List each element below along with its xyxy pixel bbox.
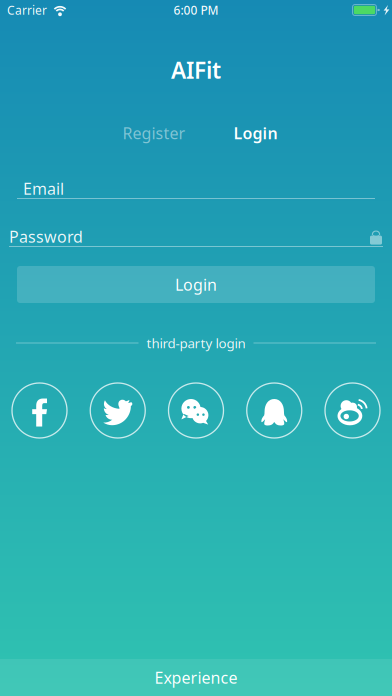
staticText: Login [175, 274, 217, 295]
button[interactable]: Login [203, 120, 308, 146]
button[interactable]: Facebook [12, 383, 67, 438]
staticText: Carrier [7, 2, 47, 18]
staticText: Password [9, 226, 83, 247]
button[interactable]: WeChat [168, 383, 223, 438]
button[interactable]: Experience [0, 659, 392, 696]
staticText: third-party login [146, 334, 245, 352]
button[interactable]: QQ [247, 383, 302, 438]
button[interactable]: Weibo [325, 383, 380, 438]
button[interactable]: Login [17, 266, 375, 303]
button[interactable]: Register [105, 120, 203, 146]
staticText: Register [122, 122, 185, 144]
button[interactable]: Twitter [90, 383, 145, 438]
staticText: 6:00 PM [173, 2, 218, 18]
staticText: Login [233, 122, 277, 144]
staticText: Email [23, 178, 64, 199]
staticText: Experience [154, 667, 237, 688]
staticText: AIFit [171, 55, 221, 85]
